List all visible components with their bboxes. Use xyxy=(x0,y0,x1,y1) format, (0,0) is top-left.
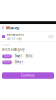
staticText: Last 30 days xyxy=(6,37,21,40)
button[interactable]: Back xyxy=(0,24,6,31)
button[interactable]: Bills xyxy=(24,54,33,58)
button[interactable]: Travel xyxy=(13,54,23,58)
staticText: Bills xyxy=(26,54,32,58)
button[interactable]: Food xyxy=(2,54,12,58)
staticText: Food xyxy=(3,54,10,58)
staticText: CATEGORY xyxy=(2,44,10,46)
button[interactable]: Other xyxy=(13,60,24,64)
staticText: Travel xyxy=(15,54,22,58)
button[interactable]: Continue xyxy=(2,72,54,79)
staticText: Rent xyxy=(3,60,10,64)
staticText: Continue xyxy=(21,74,35,77)
staticText: Transactions xyxy=(6,33,23,36)
staticText: Select a category xyxy=(2,48,24,51)
staticText: Money xyxy=(6,25,19,30)
staticText: Other xyxy=(15,60,23,64)
button[interactable]: Rent xyxy=(2,60,12,64)
